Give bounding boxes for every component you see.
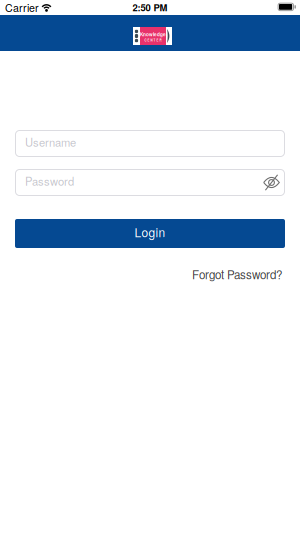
staticText: Knowledge [140,31,166,38]
button[interactable]: Login [15,219,285,248]
button[interactable]: Username [15,130,285,157]
button[interactable]: Password [15,169,285,196]
staticText: Password [25,173,74,189]
staticText: C E N T E R [144,38,161,42]
staticText: Login [134,223,165,241]
button[interactable]: Show password [263,176,280,189]
button[interactable]: Forgot Password? [192,266,282,283]
staticText: Carrier [5,0,39,15]
staticText: Forgot Password? [192,266,282,283]
staticText: Username [25,134,76,150]
staticText: 2:50 PM [132,1,167,14]
